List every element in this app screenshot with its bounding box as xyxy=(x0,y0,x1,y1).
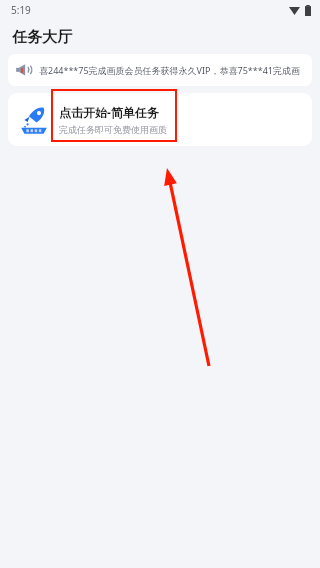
staticText: 任务大厅 xyxy=(12,28,72,47)
staticText: 5:19 xyxy=(11,3,31,17)
other: Announcement xyxy=(14,61,32,79)
button[interactable]: Announcement xyxy=(8,54,312,86)
staticText: 完成任务即可免费使用画质 xyxy=(59,124,167,135)
button[interactable]: Task xyxy=(8,93,312,146)
other: Task xyxy=(18,104,50,136)
staticText: 点击开始-简单任务 xyxy=(59,104,159,120)
staticText: 喜244***75完成画质会员任务获得永久VIP，恭喜75***41完成画质会员… xyxy=(39,64,306,76)
